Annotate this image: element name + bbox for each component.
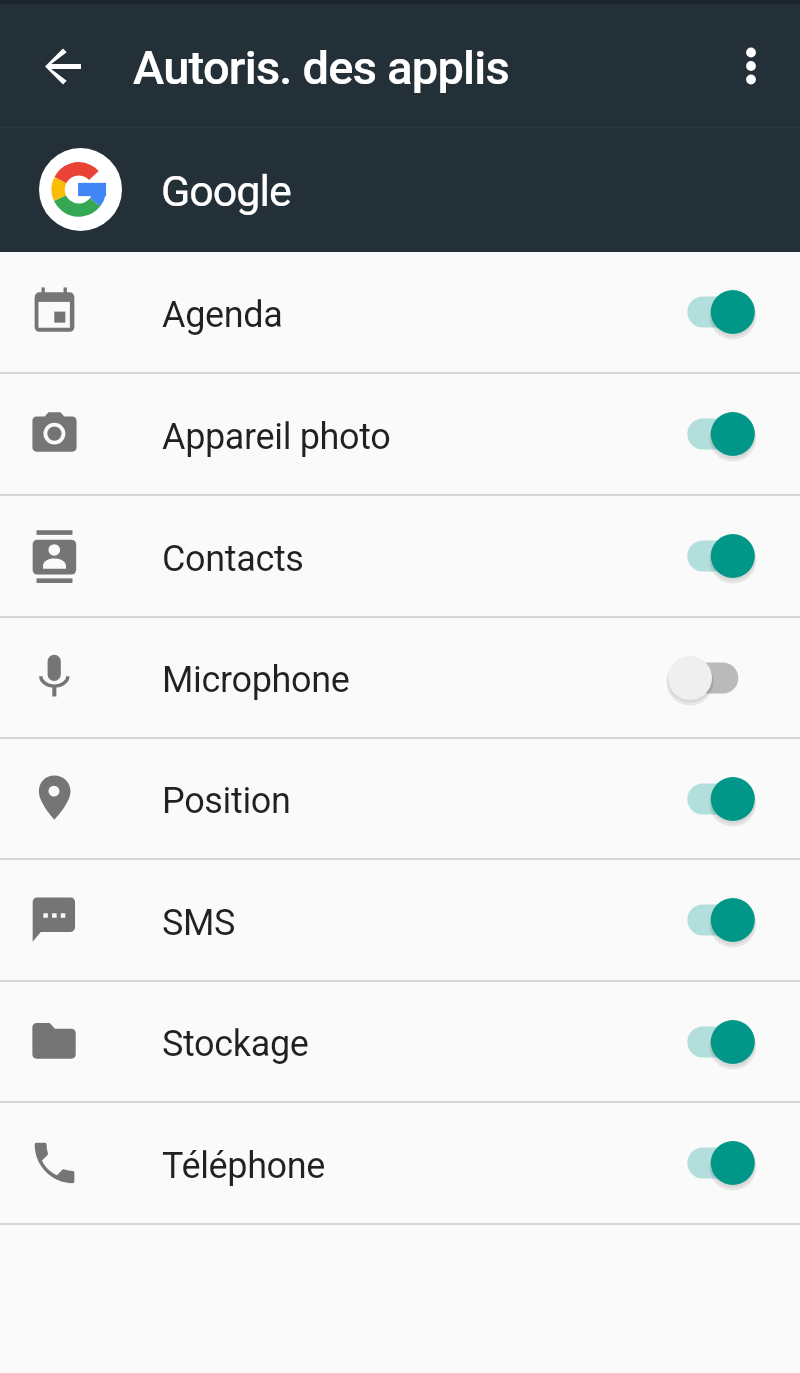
- button[interactable]: Microphone: [0, 618, 800, 739]
- staticText: Microphone: [162, 659, 350, 701]
- button[interactable]: Téléphone: [0, 1103, 800, 1225]
- button[interactable]: SMS: [0, 860, 800, 982]
- staticText: Téléphone: [162, 1145, 326, 1187]
- staticText: Google: [161, 166, 291, 216]
- button[interactable]: Back: [30, 31, 96, 97]
- button[interactable]: Agenda: [0, 252, 800, 374]
- button[interactable]: Contacts: [0, 496, 800, 618]
- staticText: Position: [162, 780, 291, 822]
- button[interactable]: Stockage: [0, 982, 800, 1103]
- staticText: Autoris. des applis: [133, 40, 509, 95]
- button[interactable]: Position: [0, 739, 800, 860]
- staticText: Stockage: [162, 1023, 309, 1065]
- staticText: Appareil photo: [162, 416, 391, 458]
- staticText: Contacts: [162, 538, 304, 580]
- button[interactable]: Google: [0, 127, 800, 252]
- staticText: SMS: [162, 902, 236, 944]
- button[interactable]: Appareil photo: [0, 374, 800, 496]
- staticText: Agenda: [162, 294, 283, 336]
- button[interactable]: More options: [723, 36, 779, 92]
